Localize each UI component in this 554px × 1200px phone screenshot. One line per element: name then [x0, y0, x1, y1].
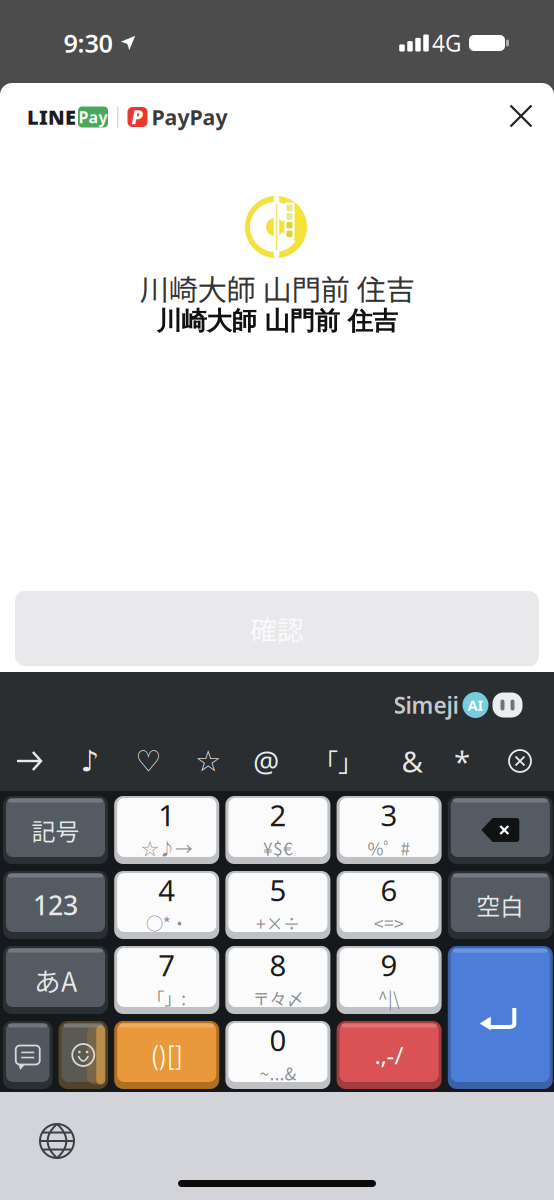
button[interactable]: 6 — [337, 871, 442, 939]
button[interactable]: ♡ — [129, 738, 167, 784]
staticText: 川崎大師 山門前 住吉 — [139, 267, 414, 309]
button[interactable]: 記号 — [3, 796, 108, 864]
staticText: LINE — [27, 104, 76, 130]
staticText: 確認 — [250, 609, 304, 648]
staticText: 〒々〆 — [252, 985, 303, 1010]
button[interactable] — [58, 1021, 108, 1089]
staticText: ¥$€ — [263, 835, 293, 860]
button[interactable] — [32, 1116, 82, 1166]
staticText: .,-/ — [375, 1039, 404, 1071]
staticText: 7 — [158, 945, 175, 984]
button[interactable]: 「」 — [307, 737, 369, 785]
button[interactable]: あA — [3, 946, 108, 1014]
button[interactable]: 123 — [3, 871, 108, 939]
button[interactable] — [9, 744, 49, 778]
button[interactable]: .,-/ — [337, 1021, 442, 1089]
button[interactable] — [3, 1021, 52, 1089]
button[interactable] — [448, 796, 553, 864]
staticText: 川崎大師 山門前 住吉 — [156, 305, 397, 337]
staticText: 「」 — [313, 743, 363, 779]
button[interactable] — [504, 745, 536, 777]
staticText: 123 — [33, 887, 78, 923]
button[interactable]: @ — [247, 735, 285, 786]
button[interactable]: LINE — [27, 105, 227, 129]
staticText: 3 — [381, 795, 398, 834]
button[interactable]: * — [448, 735, 476, 786]
button[interactable]: ()[] — [114, 1021, 219, 1089]
staticText: 9:30 — [63, 26, 112, 60]
staticText: %゜# — [368, 835, 411, 860]
staticText: P — [131, 105, 143, 129]
staticText: 4G — [432, 28, 462, 58]
staticText: ♪ — [80, 744, 99, 778]
staticText: PayPay — [151, 103, 227, 131]
staticText: 9 — [381, 945, 398, 984]
staticText: +×÷ — [256, 910, 300, 935]
staticText: & — [401, 741, 422, 780]
button[interactable]: 8 — [225, 946, 330, 1014]
button[interactable]: 4 — [114, 871, 219, 939]
button[interactable] — [500, 95, 541, 136]
staticText: 6 — [381, 870, 398, 909]
button[interactable]: 0 — [225, 1021, 330, 1089]
staticText: Pay — [78, 106, 107, 128]
staticText: ☆♪→ — [141, 835, 192, 860]
button[interactable]: ♪ — [74, 738, 105, 784]
staticText: 0 — [269, 1020, 286, 1059]
button[interactable]: Simeji — [393, 690, 522, 720]
staticText: 「」: — [147, 985, 186, 1010]
staticText: Simeji — [393, 690, 458, 720]
button[interactable]: 7 — [114, 946, 219, 1014]
button[interactable]: 9 — [337, 946, 442, 1014]
staticText: ~...& — [259, 1060, 296, 1085]
staticText: ♡ — [135, 744, 161, 778]
staticText: @ — [253, 741, 279, 780]
staticText: 4 — [158, 870, 175, 909]
staticText: あA — [34, 961, 77, 999]
staticText: 空白 — [476, 888, 524, 922]
staticText: 1 — [158, 795, 175, 834]
button[interactable]: 2 — [225, 796, 330, 864]
staticText: ^|\ — [378, 985, 400, 1010]
button[interactable]: 5 — [225, 871, 330, 939]
staticText: 記号 — [31, 813, 79, 847]
button[interactable]: ☆ — [189, 738, 227, 784]
button[interactable]: 3 — [337, 796, 442, 864]
staticText: ()[] — [151, 1038, 183, 1072]
staticText: AI — [467, 695, 483, 715]
staticText: 8 — [269, 945, 286, 984]
button[interactable]: 1 — [114, 796, 219, 864]
button[interactable]: 空白 — [448, 871, 553, 939]
staticText: ☆ — [195, 744, 221, 778]
button[interactable] — [448, 946, 553, 1089]
staticText: <=> — [374, 910, 404, 935]
staticText: 2 — [269, 795, 286, 834]
button[interactable]: & — [395, 735, 428, 786]
staticText: ○*・ — [146, 910, 188, 935]
staticText: 5 — [269, 870, 286, 909]
staticText: * — [454, 741, 470, 780]
